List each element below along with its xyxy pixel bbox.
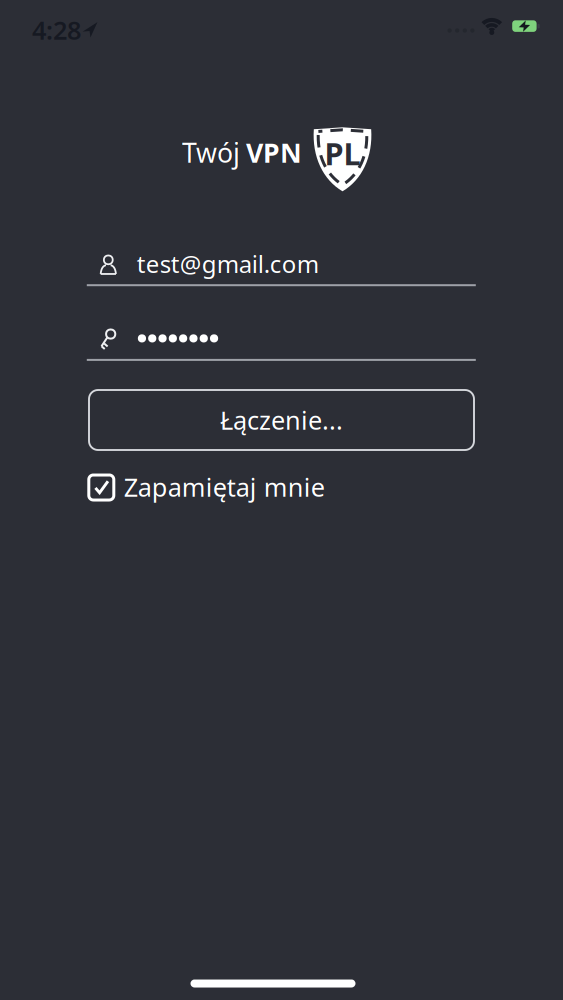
staticText: Twój [182, 135, 240, 170]
button[interactable]: test@gmail.com [87, 244, 476, 286]
staticText: Zapamiętaj mnie [124, 470, 325, 504]
staticText: 4:28 [32, 13, 81, 47]
staticText: PL [324, 133, 360, 174]
button[interactable]: Zapamiętaj mnie [88, 474, 358, 501]
button[interactable] [87, 317, 476, 361]
staticText: VPN [246, 135, 302, 170]
staticText: Łączenie... [220, 403, 343, 437]
button[interactable]: Łączenie... [89, 390, 474, 450]
staticText: test@gmail.com [137, 248, 319, 280]
